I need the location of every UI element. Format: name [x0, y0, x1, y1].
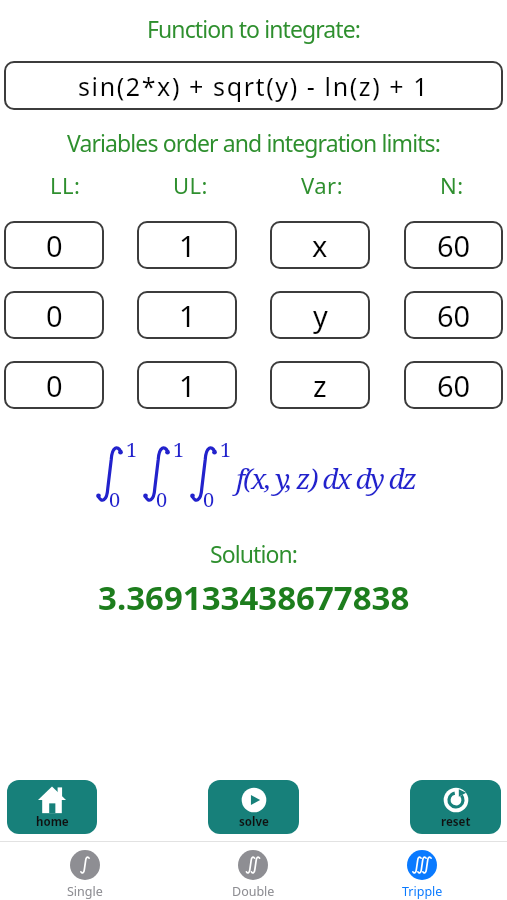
button[interactable]: Double: [213, 848, 293, 900]
staticText: 0: [203, 486, 215, 513]
button[interactable]: sin(2*x) + sqrt(y) - ln(z) + 1: [4, 61, 503, 110]
staticText: sin(2*x) + sqrt(y) - ln(z) + 1: [78, 69, 430, 103]
button[interactable]: 0: [4, 221, 104, 269]
staticText: LL:: [50, 170, 81, 196]
button[interactable]: z: [270, 361, 370, 409]
staticText: f(x, y, z) dx dy dz: [236, 459, 416, 497]
button[interactable]: home: [7, 780, 97, 834]
staticText: 0: [156, 486, 168, 513]
button[interactable]: y: [270, 291, 370, 339]
staticText: 0: [109, 486, 121, 513]
staticText: 1: [126, 436, 138, 463]
staticText: 0: [46, 226, 63, 265]
staticText: 1: [179, 296, 196, 335]
staticText: 1: [220, 436, 232, 463]
staticText: 1: [179, 226, 196, 265]
button[interactable]: reset: [410, 780, 501, 834]
staticText: Var:: [301, 170, 344, 196]
staticText: 60: [437, 226, 471, 265]
staticText: Function to integrate:: [147, 13, 361, 44]
staticText: y: [313, 296, 328, 335]
staticText: 1: [173, 436, 185, 463]
button[interactable]: 60: [404, 291, 503, 339]
staticText: Solution:: [210, 538, 298, 569]
staticText: 60: [437, 366, 471, 405]
staticText: 60: [437, 296, 471, 335]
staticText: z: [313, 366, 327, 405]
staticText: Tripple: [402, 883, 443, 900]
staticText: Variables order and integration limits:: [67, 127, 440, 158]
button[interactable]: x: [270, 221, 370, 269]
button[interactable]: 1: [137, 291, 237, 339]
staticText: x: [312, 226, 328, 265]
staticText: reset: [441, 814, 471, 830]
button[interactable]: 60: [404, 221, 503, 269]
button[interactable]: Single: [45, 848, 125, 900]
button[interactable]: 0: [4, 291, 104, 339]
staticText: N:: [440, 170, 464, 196]
staticText: 3.369133438677838: [98, 575, 410, 620]
button[interactable]: 1: [137, 361, 237, 409]
staticText: 0: [46, 296, 63, 335]
staticText: UL:: [173, 170, 209, 196]
staticText: Single: [67, 883, 103, 900]
staticText: 1: [179, 366, 196, 405]
staticText: 0: [46, 366, 63, 405]
button[interactable]: solve: [208, 780, 299, 834]
button[interactable]: 1: [137, 221, 237, 269]
button[interactable]: 60: [404, 361, 503, 409]
staticText: home: [36, 814, 69, 830]
staticText: solve: [239, 814, 269, 830]
button[interactable]: 0: [4, 361, 104, 409]
staticText: Double: [232, 883, 275, 900]
button[interactable]: Tripple: [382, 848, 462, 900]
